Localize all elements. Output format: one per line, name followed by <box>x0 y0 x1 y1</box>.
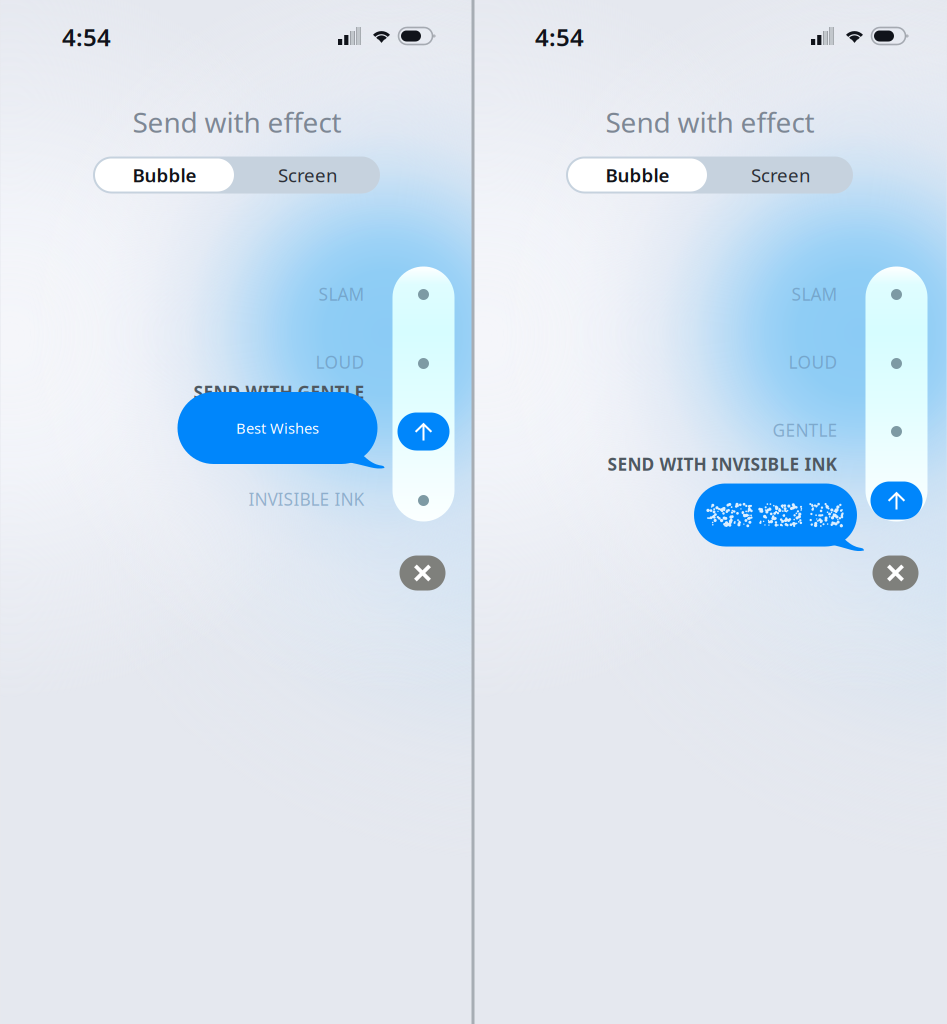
staticText: SEND WITH GENTLE <box>193 380 364 403</box>
staticText: Screen <box>751 163 811 187</box>
staticText: Best Wishes <box>236 418 319 438</box>
button[interactable]: Send with effect <box>870 481 922 519</box>
button[interactable]: Effect option <box>406 346 440 380</box>
staticText: 4:54 <box>62 21 111 53</box>
button[interactable]: SLAM <box>485 281 837 307</box>
staticText: INVISIBLE INK <box>248 487 364 510</box>
staticText: Send with effect <box>605 103 814 141</box>
button[interactable]: LOUD <box>12 349 364 375</box>
button[interactable]: SLAM <box>12 281 364 307</box>
button[interactable]: Effect option <box>879 277 913 311</box>
button[interactable]: GENTLE <box>485 417 837 443</box>
button[interactable]: Close <box>399 555 445 590</box>
button[interactable]: Effect option <box>879 414 913 448</box>
button[interactable]: Effect option <box>406 277 440 311</box>
staticText: Send with effect <box>132 103 341 141</box>
staticText: Screen <box>278 163 338 187</box>
button[interactable]: Bubble <box>568 158 707 191</box>
button[interactable]: Close <box>872 555 918 590</box>
staticText: SLAM <box>791 282 837 305</box>
staticText: LOUD <box>788 350 837 373</box>
staticText: SEND WITH INVISIBLE INK <box>607 452 837 475</box>
staticText: Bubble <box>132 163 196 187</box>
button[interactable]: Screen <box>709 156 853 193</box>
staticText: SLAM <box>318 282 364 305</box>
staticText: 4:54 <box>535 21 584 53</box>
button[interactable]: INVISIBLE INK <box>12 486 364 512</box>
button[interactable]: LOUD <box>485 349 837 375</box>
button[interactable]: Effect option <box>879 346 913 380</box>
staticText: LOUD <box>315 350 364 373</box>
button[interactable]: Send with effect <box>397 412 449 450</box>
button[interactable]: Bubble <box>95 158 234 191</box>
staticText: Bubble <box>605 163 669 187</box>
button[interactable]: Effect option <box>406 483 440 517</box>
staticText: GENTLE <box>772 418 837 441</box>
button[interactable]: Screen <box>236 156 380 193</box>
